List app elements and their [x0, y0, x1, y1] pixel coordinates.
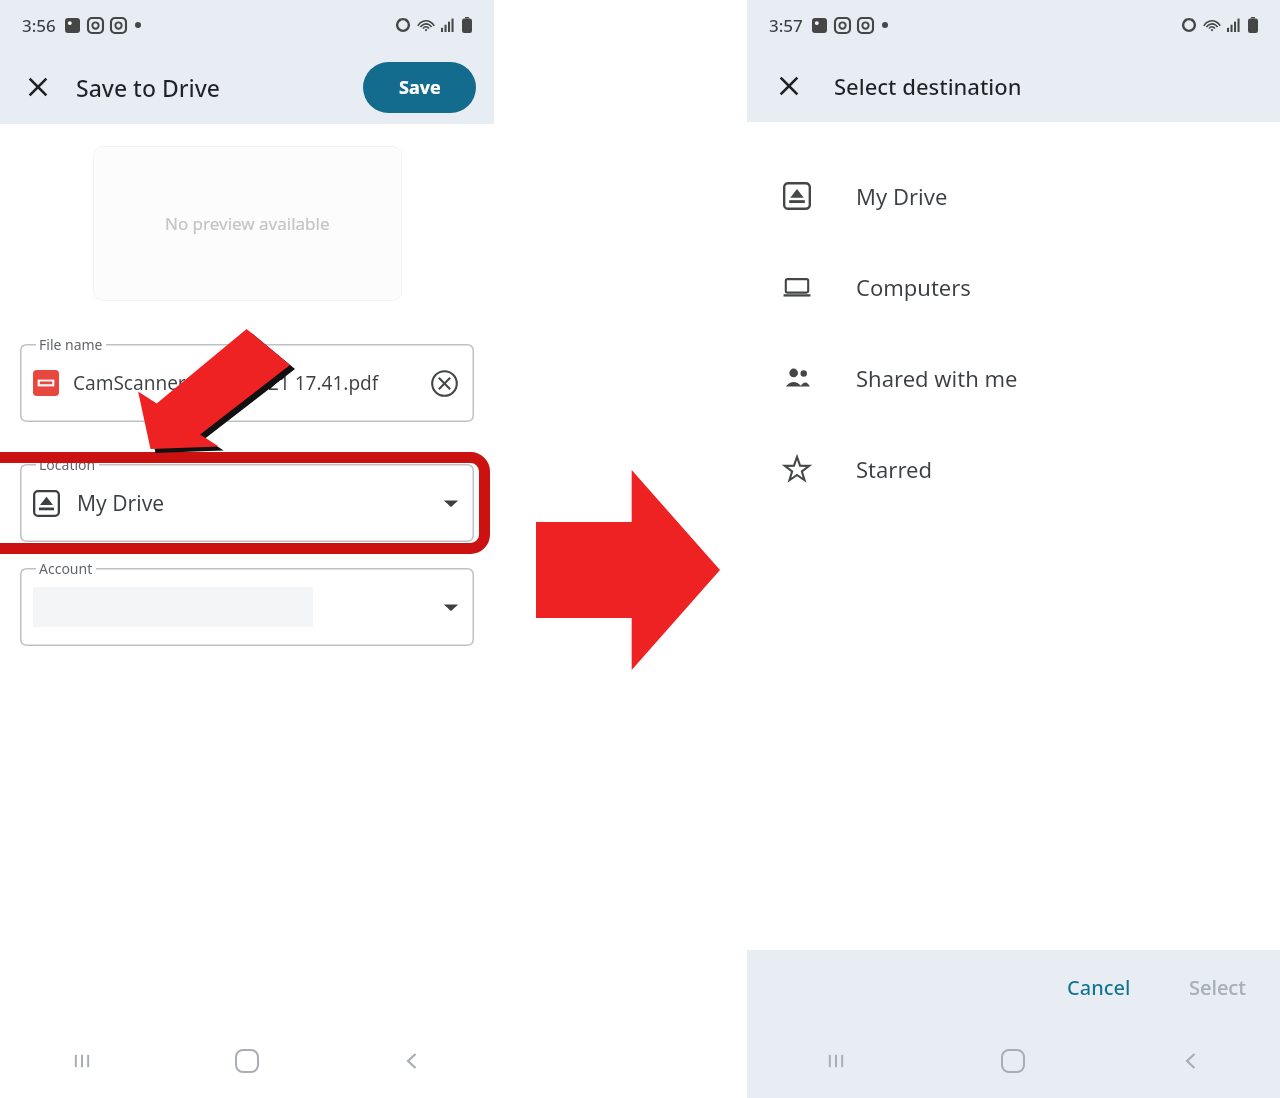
staticText: My Drive — [856, 181, 948, 211]
button[interactable]: Account — [20, 568, 474, 646]
button[interactable]: No preview available — [93, 146, 402, 301]
staticText: CamScanner 06-16-2021 17.41.pdf — [73, 370, 379, 396]
staticText: Save to Drive — [76, 72, 221, 103]
button[interactable]: File name — [20, 344, 474, 422]
button[interactable]: Close — [769, 66, 809, 106]
staticText: My Drive — [77, 489, 165, 518]
button[interactable]: Recents — [747, 1024, 924, 1098]
button[interactable]: Select — [1189, 974, 1246, 1001]
button[interactable]: My Drive — [747, 150, 1280, 241]
staticText: Computers — [856, 272, 971, 302]
button[interactable]: Cancel — [1067, 974, 1131, 1001]
button[interactable]: Computers — [747, 241, 1280, 332]
button[interactable]: Save — [363, 62, 476, 113]
staticText: Cancel — [1067, 974, 1131, 1001]
button[interactable]: Shared with me — [747, 332, 1280, 423]
button[interactable]: Home — [164, 1024, 329, 1098]
staticText: No preview available — [165, 212, 330, 235]
staticText: Location — [39, 455, 96, 474]
button[interactable]: Home — [924, 1024, 1102, 1098]
button[interactable]: Recents — [0, 1024, 164, 1098]
button[interactable]: Back — [329, 1024, 494, 1098]
button[interactable]: Back — [1102, 1024, 1280, 1098]
button[interactable]: Location — [20, 464, 474, 542]
staticText: Shared with me — [856, 363, 1018, 393]
staticText: Select — [1189, 974, 1246, 1001]
button[interactable]: Clear file name — [427, 366, 461, 400]
staticText: Select destination — [834, 71, 1022, 101]
staticText: 3:56 — [22, 14, 56, 37]
staticText: 3:57 — [769, 14, 803, 37]
staticText: Save — [399, 75, 441, 100]
button[interactable]: Starred — [747, 423, 1280, 514]
staticText: Starred — [856, 454, 933, 484]
button[interactable]: Close — [18, 67, 58, 107]
staticText: File name — [39, 335, 103, 354]
staticText: Account — [39, 559, 93, 578]
